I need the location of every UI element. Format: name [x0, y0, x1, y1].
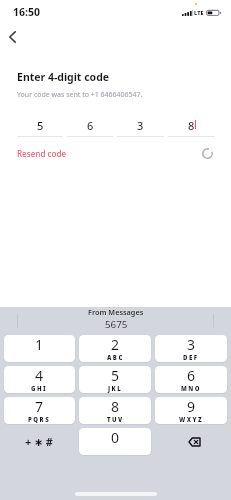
button[interactable]: 5 [79, 366, 151, 393]
button[interactable]: 6 [155, 366, 227, 393]
staticText: 6 [187, 366, 196, 385]
staticText: 4 [35, 366, 44, 385]
staticText: ABC [107, 354, 124, 362]
staticText: + ∗ # [25, 434, 54, 449]
staticText: 3 [187, 335, 196, 354]
staticText: PQRS [28, 416, 51, 424]
button[interactable]: 9 [155, 397, 227, 424]
staticText: 7 [35, 397, 44, 416]
staticText: 16:50 [13, 5, 40, 19]
staticText: 8 [111, 397, 120, 416]
button[interactable]: 8 [79, 397, 151, 424]
staticText: 2 [111, 335, 120, 354]
button[interactable]: 3 [155, 335, 227, 362]
staticText: 5675 [105, 318, 128, 331]
button[interactable]: 7 [4, 397, 75, 424]
staticText: 9 [187, 397, 196, 416]
button[interactable]: Resend code [17, 148, 67, 159]
staticText: 1 [35, 335, 44, 354]
staticText: 8 [188, 118, 195, 130]
staticText: GHI [31, 385, 48, 393]
button[interactable]: 0 [79, 428, 151, 455]
staticText: JKL [108, 385, 123, 393]
staticText: WXYZ [179, 416, 204, 424]
staticText: Your code was sent to +1 6466406547. [17, 90, 143, 100]
staticText: 0 [111, 428, 120, 447]
staticText: 6 [87, 118, 94, 130]
button[interactable]: 4 [4, 366, 75, 393]
button[interactable]: Back [1, 26, 23, 48]
staticText: From Messages [88, 307, 144, 317]
staticText: 5 [111, 366, 120, 385]
staticText: 3 [137, 118, 144, 130]
staticText: LTE [194, 9, 204, 16]
staticText: DEF [183, 354, 199, 362]
button[interactable]: + ∗ # [4, 428, 75, 455]
staticText: Enter 4-digit code [17, 70, 110, 84]
button[interactable]: 2 [79, 335, 151, 362]
staticText: 5 [37, 118, 44, 130]
staticText: TUV [107, 416, 124, 424]
staticText: MNO [181, 385, 202, 393]
staticText: Resend code [17, 148, 67, 159]
button[interactable]: 1 [4, 335, 75, 362]
button[interactable]: Delete [155, 428, 227, 455]
